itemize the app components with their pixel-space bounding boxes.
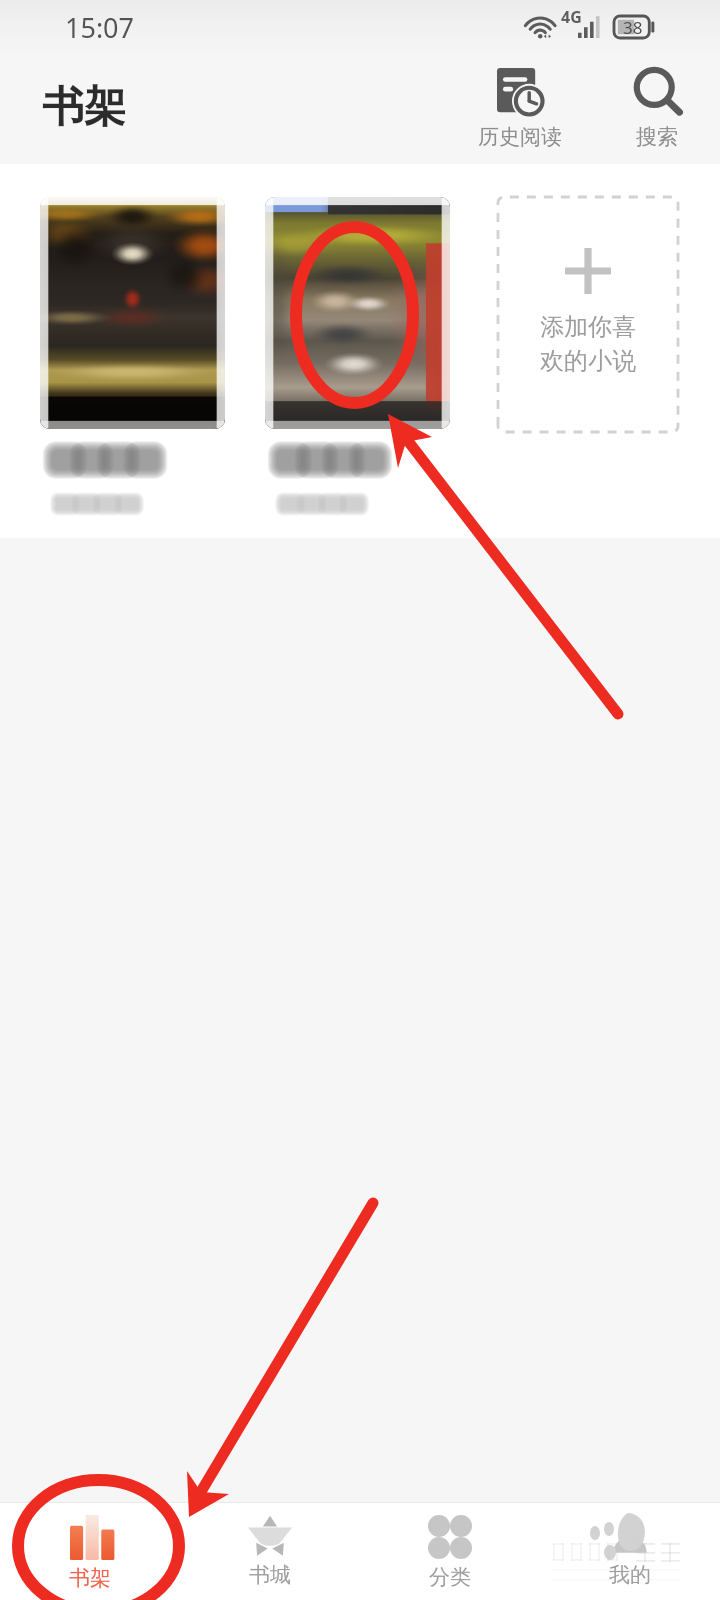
button[interactable]: 我的	[540, 1503, 720, 1600]
button[interactable]: 搜索	[624, 64, 690, 154]
button[interactable]: 分类	[360, 1503, 540, 1600]
staticText: 分类	[429, 1564, 471, 1590]
button[interactable]	[265, 197, 450, 515]
staticText: 我的	[609, 1562, 651, 1588]
button[interactable]: 书架	[0, 1503, 180, 1600]
staticText: 历史阅读	[478, 124, 562, 150]
button[interactable]	[40, 197, 225, 515]
staticText: 38	[623, 16, 643, 38]
staticText: 添加你喜 欢的小说	[540, 312, 636, 377]
other: 历史阅读	[497, 68, 543, 114]
staticText: 书架	[42, 81, 126, 134]
staticText: 4G	[561, 6, 582, 28]
other: 搜索	[634, 68, 680, 114]
staticText: 书城	[249, 1562, 291, 1588]
staticText: 搜索	[636, 124, 678, 150]
staticText: 15:07	[65, 9, 135, 46]
button[interactable]: 书城	[180, 1503, 360, 1600]
button[interactable]: 历史阅读	[468, 64, 572, 154]
staticText: 书架	[69, 1565, 111, 1591]
button[interactable]: 添加你喜 欢的小说	[498, 197, 678, 432]
